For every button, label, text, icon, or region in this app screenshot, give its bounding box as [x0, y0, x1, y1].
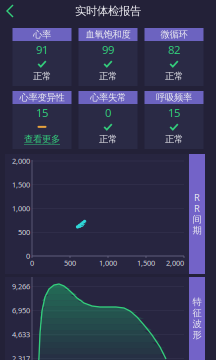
staticText: 9,266: [12, 281, 30, 291]
staticText: 1,000: [12, 203, 30, 213]
staticText: 0: [26, 251, 30, 261]
staticText: 查看更多: [24, 133, 60, 145]
staticText: 0: [105, 105, 111, 120]
button[interactable]: 心率失常: [78, 91, 137, 149]
staticText: 正常: [99, 133, 117, 145]
button[interactable]: Back: [0, 0, 21, 24]
staticText: 1,000: [99, 258, 117, 268]
staticText: 2,000: [12, 156, 30, 166]
button[interactable]: 心率: [12, 28, 71, 86]
button[interactable]: 血氧饱和度: [78, 28, 137, 86]
staticText: 心率失常: [90, 92, 126, 103]
staticText: 间: [192, 214, 201, 225]
staticText: 15: [168, 105, 180, 120]
staticText: 微循环: [160, 29, 187, 40]
staticText: 实时体检报告: [75, 4, 141, 18]
staticText: 征: [192, 307, 201, 319]
staticText: 心率变异性: [19, 92, 64, 103]
staticText: 特: [192, 296, 201, 308]
staticText: 正常: [33, 70, 51, 82]
staticText: 91: [36, 42, 48, 57]
staticText: 2,317: [12, 353, 30, 360]
staticText: R: [194, 202, 200, 215]
staticText: 82: [168, 42, 180, 57]
staticText: 心率: [33, 29, 51, 40]
staticText: R: [194, 191, 200, 204]
staticText: 15: [36, 105, 48, 120]
staticText: 500: [64, 258, 76, 268]
staticText: 0: [30, 258, 34, 268]
staticText: 正常: [165, 133, 183, 145]
button[interactable]: R: [189, 154, 205, 274]
staticText: 血氧饱和度: [85, 29, 130, 40]
staticText: 1,500: [137, 258, 155, 268]
staticText: 4,633: [12, 329, 30, 339]
staticText: 500: [18, 227, 30, 237]
staticText: 1,500: [12, 180, 30, 190]
button[interactable]: 特: [189, 277, 205, 360]
button[interactable]: 呼吸频率: [144, 91, 203, 149]
staticText: 呼吸频率: [156, 92, 192, 103]
button[interactable]: 心率变异性: [12, 91, 71, 149]
staticText: 正常: [165, 70, 183, 82]
staticText: 波: [192, 318, 201, 330]
staticText: 2,000: [166, 258, 184, 268]
staticText: 6,950: [12, 305, 30, 315]
button[interactable]: 微循环: [144, 28, 203, 86]
staticText: 正常: [99, 70, 117, 82]
staticText: 99: [102, 42, 114, 57]
staticText: 形: [192, 329, 201, 341]
staticText: 期: [192, 225, 201, 236]
